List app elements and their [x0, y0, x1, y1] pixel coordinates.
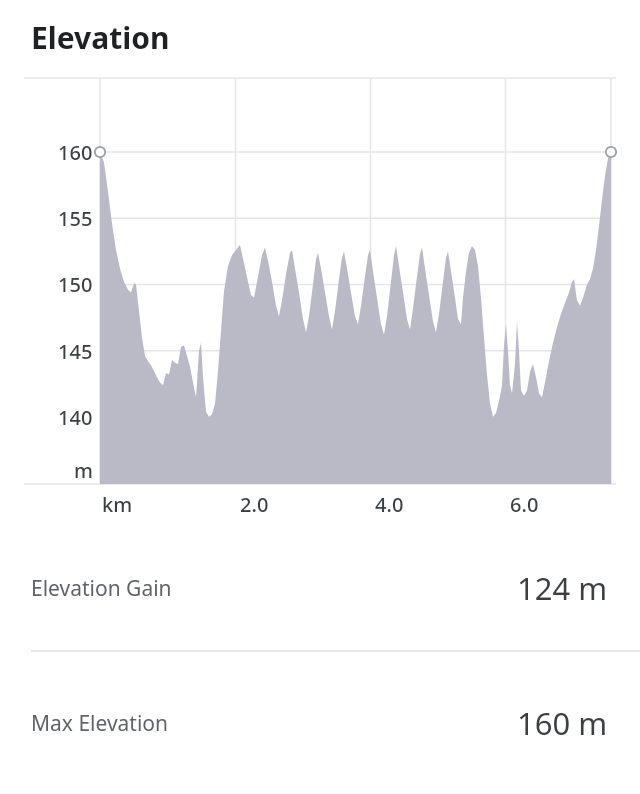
staticText: 160	[58, 139, 93, 165]
staticText: km	[102, 491, 133, 518]
staticText: m	[74, 457, 93, 483]
staticText: Max Elevation	[31, 709, 169, 738]
staticText: 2.0	[240, 491, 269, 518]
staticText: 145	[58, 338, 93, 364]
staticText: 4.0	[375, 491, 404, 518]
staticText: Elevation	[31, 17, 170, 58]
staticText: Elevation Gain	[31, 574, 172, 603]
staticText: 150	[58, 271, 93, 297]
button[interactable]: Elevation Gain	[0, 558, 640, 618]
staticText: 124 m	[517, 567, 608, 609]
staticText: 155	[58, 205, 93, 231]
staticText: 140	[58, 404, 93, 430]
button[interactable]: Max Elevation	[0, 693, 640, 753]
staticText: 6.0	[510, 491, 539, 518]
staticText: 160 m	[517, 702, 608, 744]
